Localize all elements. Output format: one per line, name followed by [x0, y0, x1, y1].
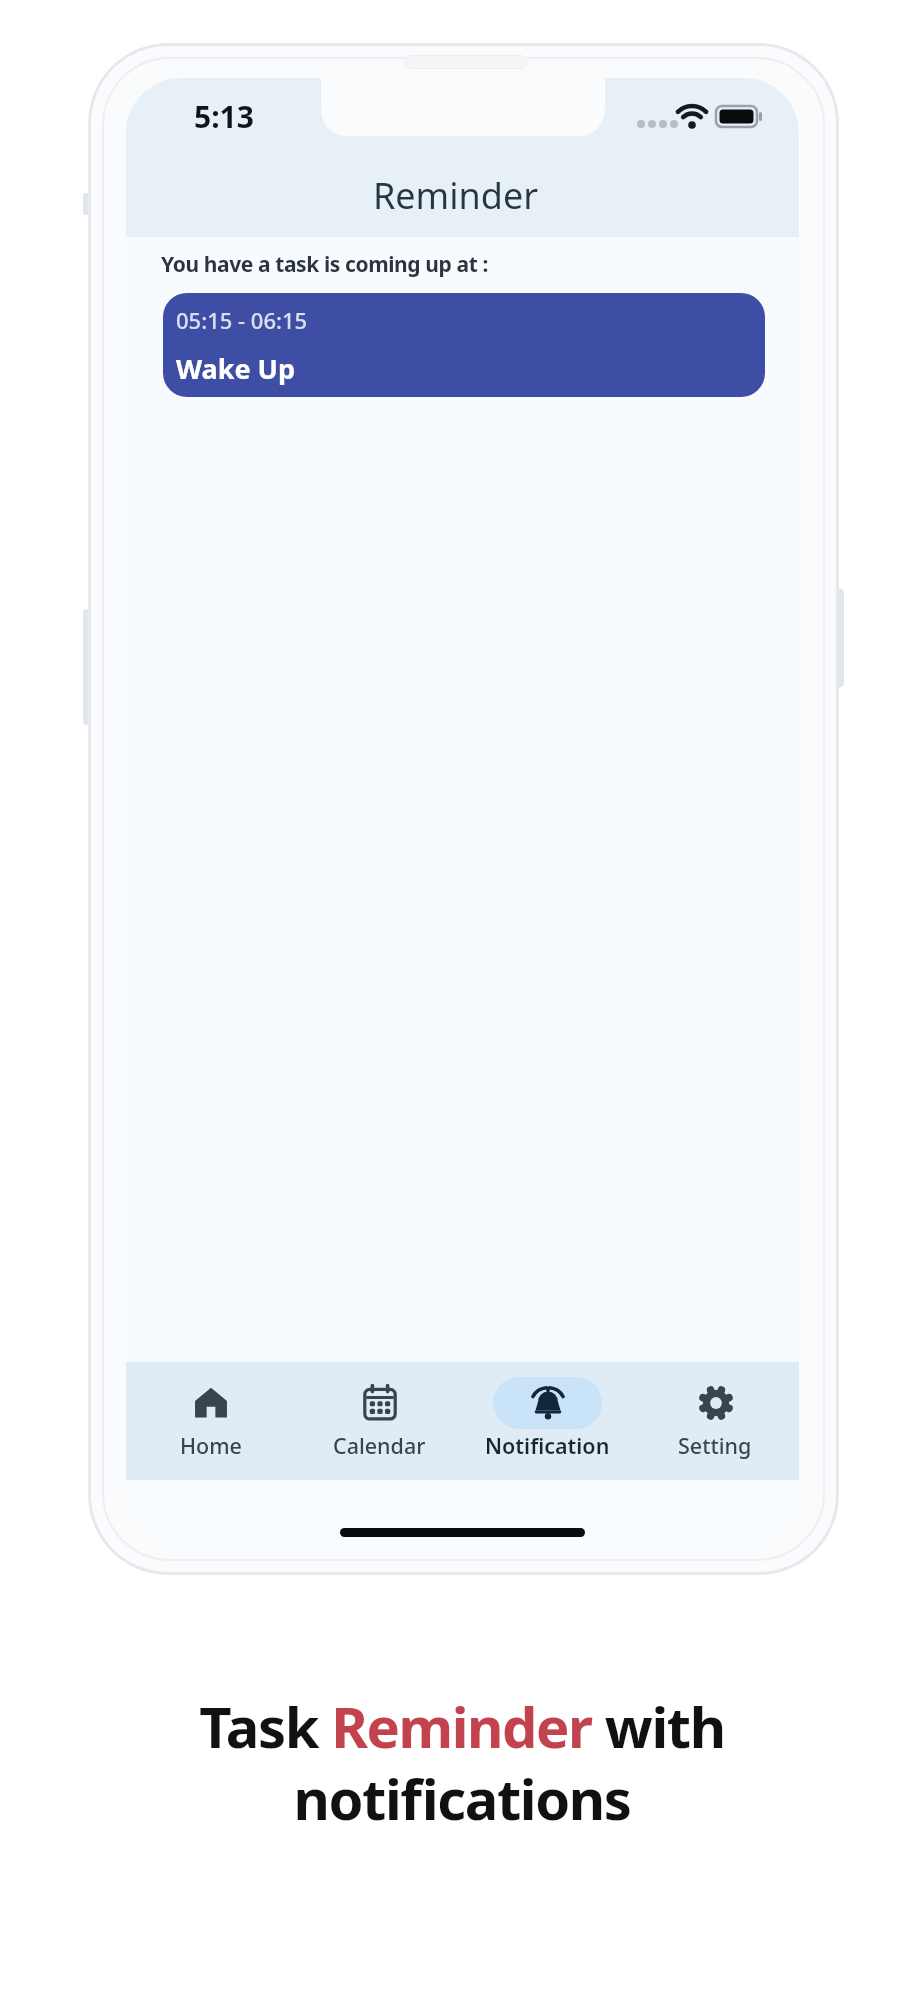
staticText: notifications	[0, 1760, 924, 1836]
staticText: Wake Up	[176, 350, 296, 387]
button[interactable]: Setting	[631, 1362, 799, 1480]
button[interactable]: Notification	[463, 1362, 631, 1480]
staticText: Task Reminder with	[0, 1688, 924, 1764]
staticText: Home	[180, 1431, 242, 1460]
staticText: Notification	[485, 1431, 610, 1460]
button[interactable]: Calendar	[295, 1362, 463, 1480]
staticText: 05:15 - 06:15	[176, 305, 308, 335]
button[interactable]: 05:15 - 06:15	[163, 293, 765, 397]
staticText: Reminder	[126, 171, 792, 220]
button[interactable]: Home	[126, 1362, 295, 1480]
staticText: Calendar	[333, 1431, 426, 1460]
staticText: 5:13	[194, 96, 254, 137]
staticText: Setting	[678, 1431, 752, 1460]
staticText: You have a task is coming up at :	[161, 250, 488, 279]
